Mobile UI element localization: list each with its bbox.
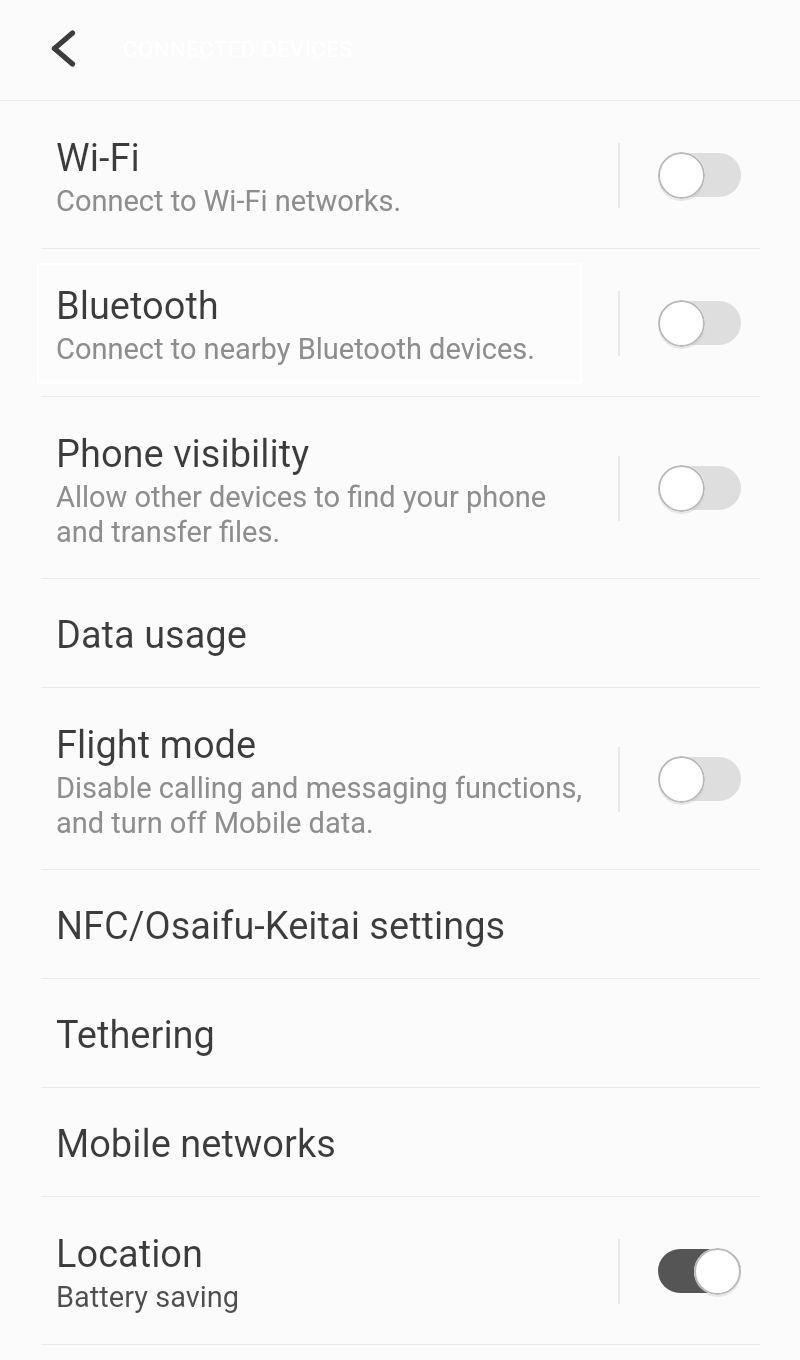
staticText: Battery saving — [56, 1280, 240, 1314]
button[interactable]: Toggle Flight mode — [658, 754, 741, 804]
button[interactable]: Bluetooth — [0, 250, 800, 396]
staticText: Mobile networks — [56, 1122, 336, 1167]
staticText: Tethering — [56, 1013, 215, 1058]
staticText: Location — [56, 1232, 204, 1277]
staticText: Bluetooth — [56, 284, 219, 329]
staticText: Phone visibility — [56, 432, 310, 477]
staticText: Data usage — [56, 613, 247, 658]
staticText: Wi-Fi — [56, 136, 140, 181]
staticText: Flight mode — [56, 723, 257, 768]
button[interactable]: Toggle Bluetooth — [658, 298, 741, 348]
staticText: Disable calling and messaging functions,… — [56, 771, 583, 840]
button[interactable]: Toggle Location — [658, 1246, 741, 1296]
button[interactable]: Toggle Phone visibility — [658, 463, 741, 513]
button[interactable]: Navigate up — [22, 9, 104, 91]
button[interactable]: Phone visibility — [0, 398, 800, 578]
button[interactable]: Location — [0, 1198, 800, 1344]
button[interactable]: Tethering — [0, 980, 800, 1087]
button[interactable]: Toggle Wi-Fi — [658, 150, 741, 200]
button[interactable]: NFC/Osaifu-Keitai settings — [0, 871, 800, 978]
button[interactable]: Wi-Fi — [0, 102, 800, 248]
button[interactable]: Flight mode — [0, 689, 800, 869]
staticText: NFC/Osaifu-Keitai settings — [56, 904, 506, 949]
button[interactable]: Mobile networks — [0, 1089, 800, 1196]
staticText: Allow other devices to find your phone a… — [56, 480, 547, 549]
button[interactable]: Data usage — [0, 580, 800, 687]
staticText: Connect to nearby Bluetooth devices. — [56, 332, 535, 366]
staticText: Connect to Wi-Fi networks. — [56, 184, 402, 218]
